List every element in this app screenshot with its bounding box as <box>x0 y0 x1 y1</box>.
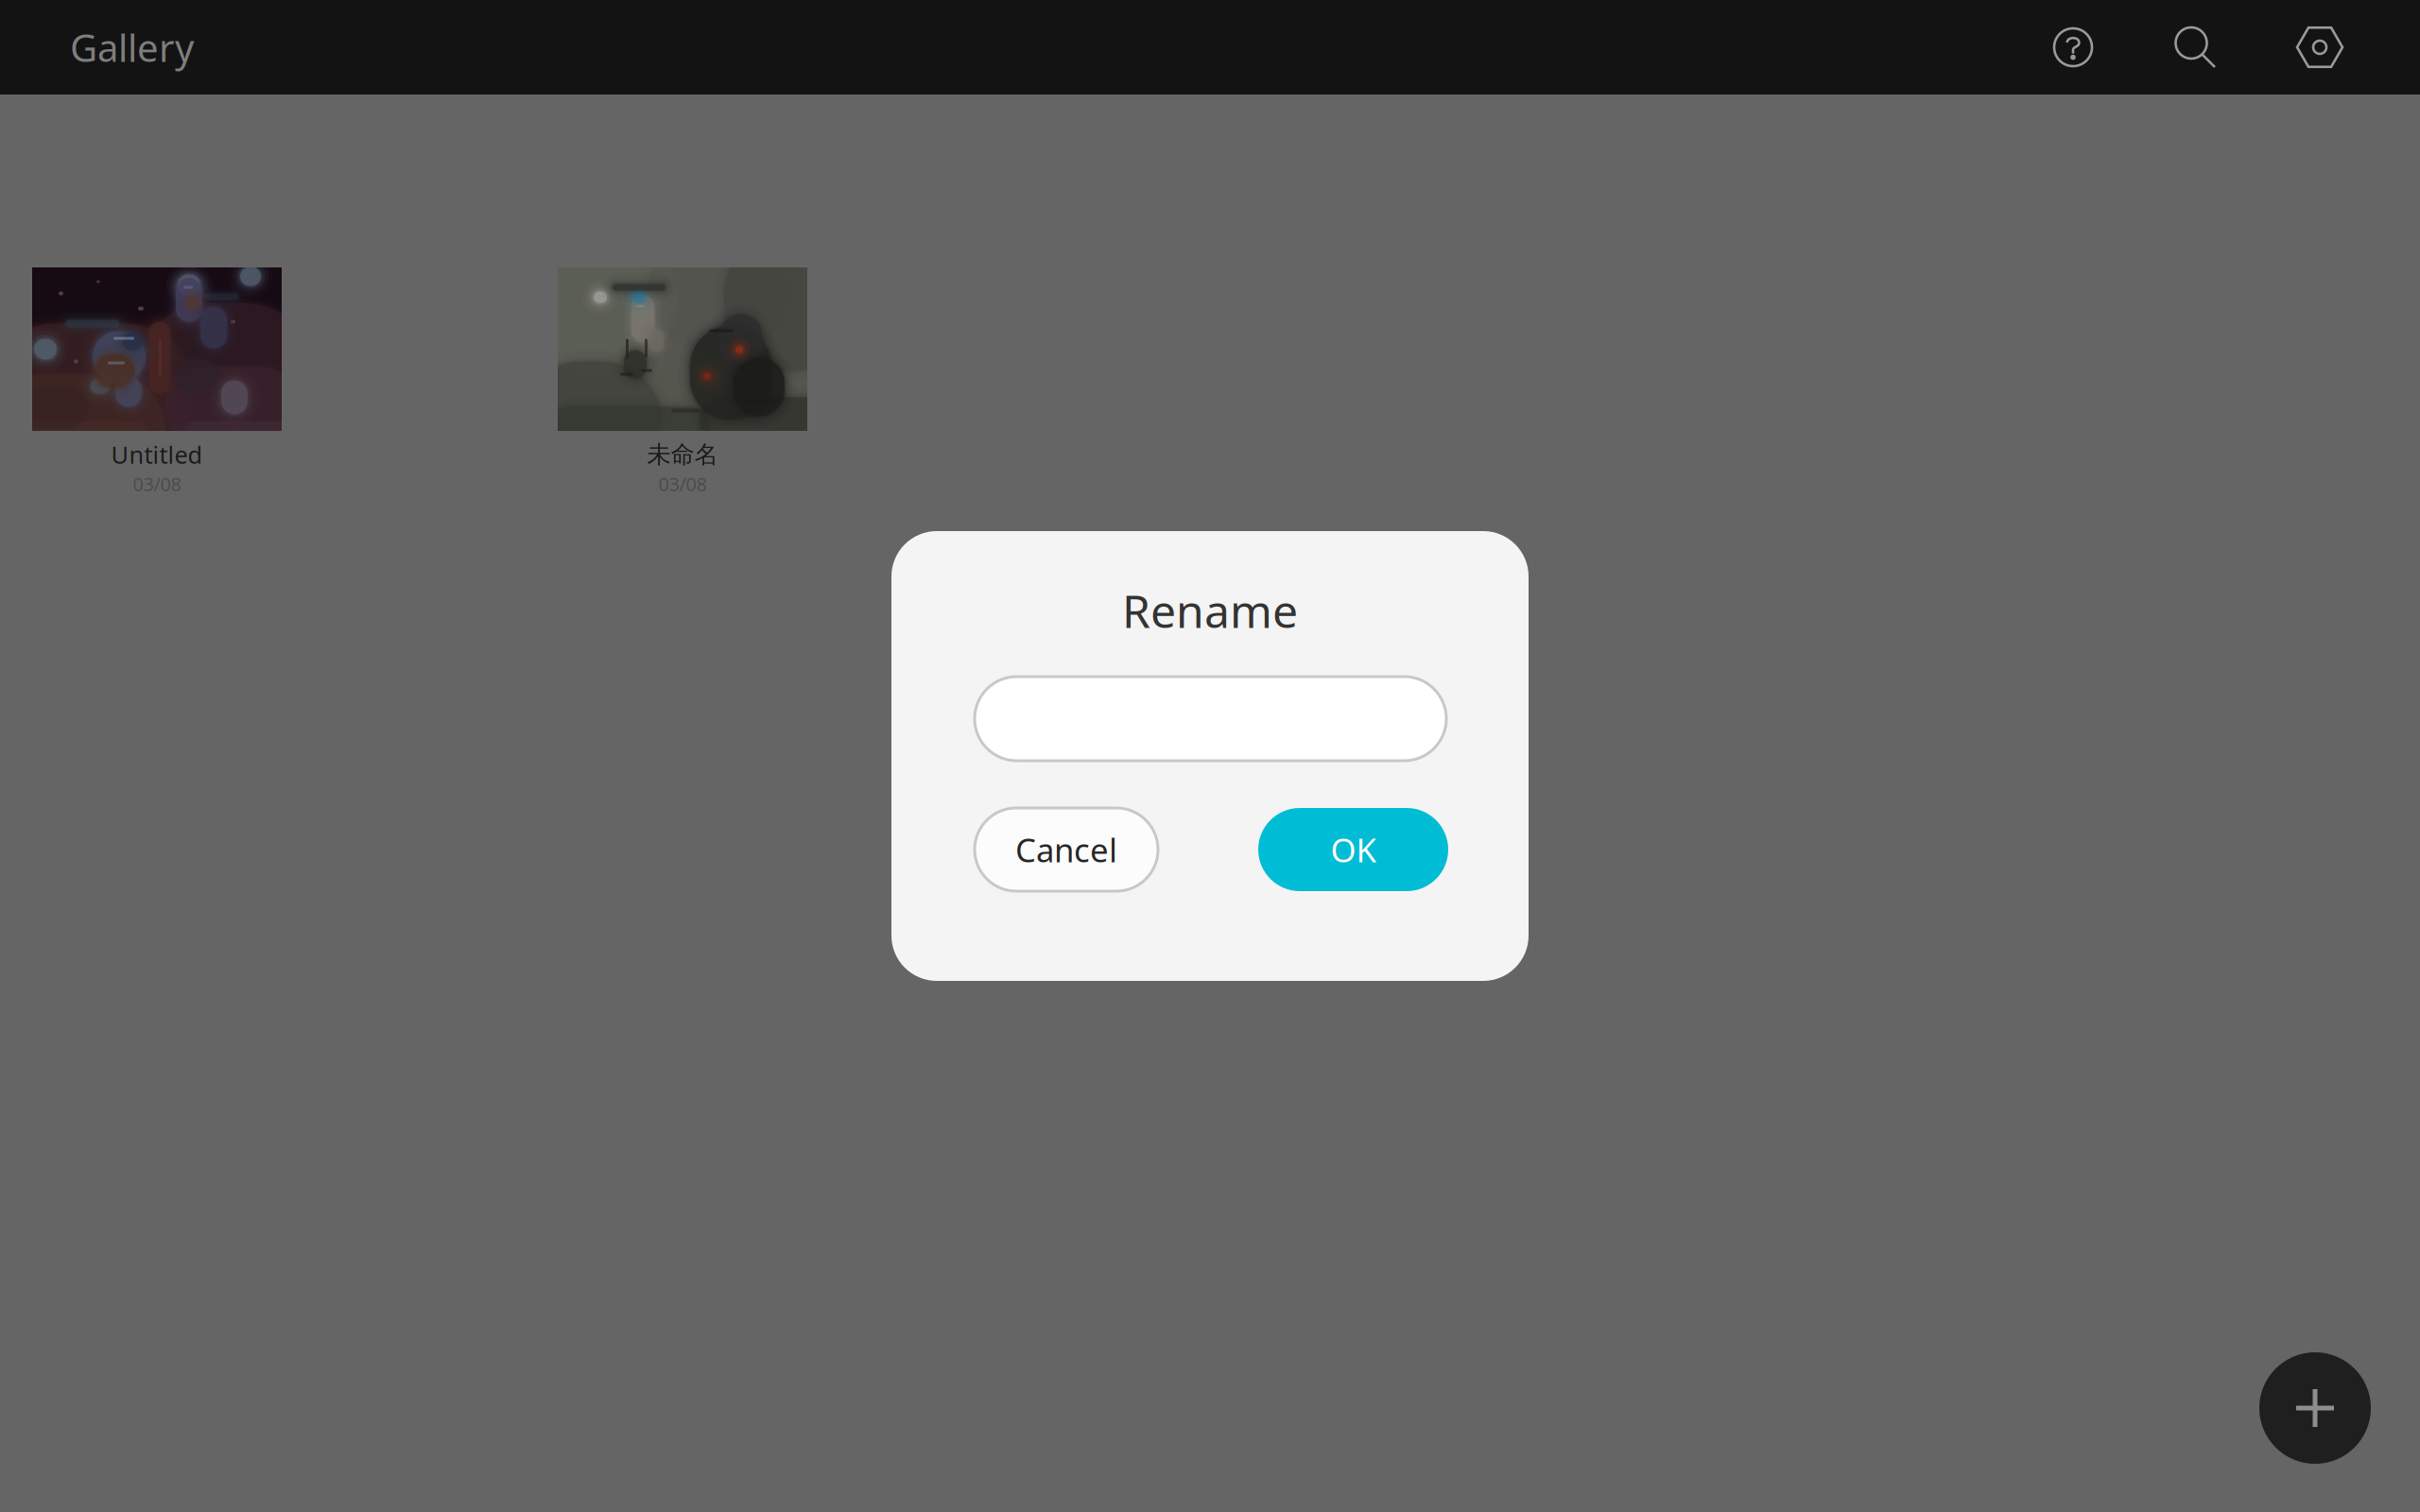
staticText: Untitled <box>111 439 203 470</box>
staticText: Rename <box>1122 580 1298 641</box>
button[interactable]: Search <box>2173 25 2219 70</box>
button[interactable]: Cancel <box>975 808 1158 891</box>
staticText: Gallery <box>70 22 194 72</box>
button[interactable]: Help <box>2050 25 2096 70</box>
button[interactable]: 未命名 <box>558 267 807 494</box>
staticText: Cancel <box>1015 828 1117 871</box>
staticText: 未命名 <box>647 440 718 469</box>
button[interactable]: OK <box>1258 808 1448 891</box>
staticText: OK <box>1331 828 1376 871</box>
button[interactable]: Settings <box>2297 25 2342 70</box>
button[interactable]: New <box>2259 1352 2371 1464</box>
staticText: 03/08 <box>133 471 181 496</box>
staticText: 03/08 <box>658 471 707 496</box>
button[interactable]: Untitled <box>32 267 282 494</box>
